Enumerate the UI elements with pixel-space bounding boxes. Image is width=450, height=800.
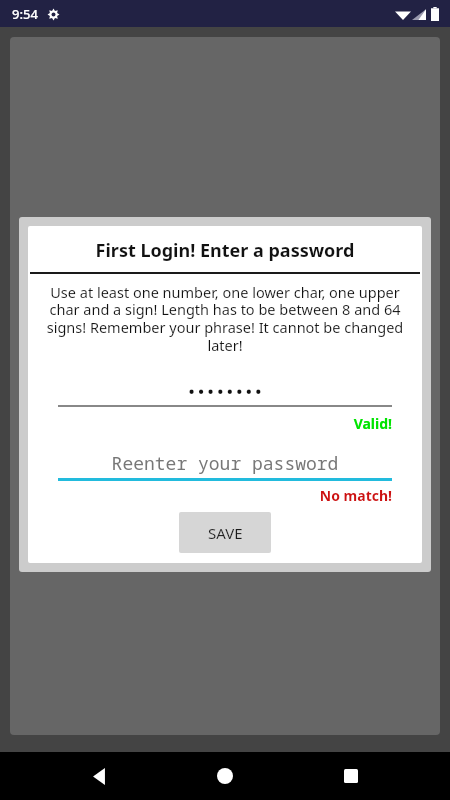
button[interactable]: SAVE — [179, 512, 271, 553]
staticText: First Login! Enter a password — [36, 238, 414, 263]
button[interactable]: Home — [201, 752, 249, 800]
staticText: • • • • • • • • — [58, 381, 392, 401]
button[interactable]: Recent apps — [327, 752, 375, 800]
staticText: Valid! — [58, 414, 392, 433]
staticText: 9:54 — [12, 5, 38, 23]
staticText: Reenter your password — [58, 451, 392, 476]
button[interactable]: • • • • • • • • — [58, 381, 392, 407]
staticText: Use at least one number, one lower char,… — [34, 282, 416, 355]
button[interactable]: Back — [75, 752, 123, 800]
staticText: SAVE — [208, 523, 243, 543]
button[interactable]: Reenter your password — [58, 451, 392, 481]
staticText: No match! — [58, 486, 392, 505]
